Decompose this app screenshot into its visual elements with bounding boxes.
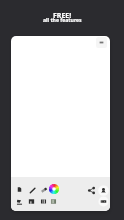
button[interactable]: Colour [48,183,60,195]
button[interactable]: Download [98,185,109,196]
staticText: all the features [43,17,82,24]
button[interactable]: Layers [96,37,107,48]
staticText: FREE! [53,11,72,21]
button[interactable]: Sticker [26,196,37,207]
button[interactable]: Document [14,184,25,195]
button[interactable]: Language [98,196,109,207]
button[interactable]: Eraser [38,185,49,196]
button[interactable]: Gallery [48,196,59,207]
button[interactable]: Pen [27,185,38,196]
button[interactable]: Crop [38,196,49,207]
button[interactable]: Share [86,185,97,196]
button[interactable]: Fill [14,196,25,207]
